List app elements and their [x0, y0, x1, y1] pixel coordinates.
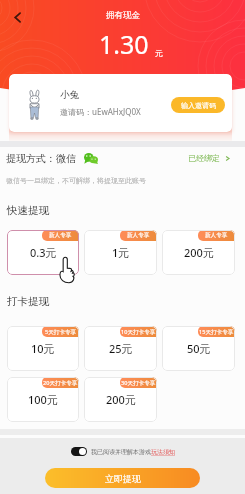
staticText: 50元	[187, 341, 211, 356]
button[interactable]: Back	[5, 5, 29, 29]
staticText: 打卡提现	[7, 295, 49, 308]
staticText: 新人专享	[49, 232, 72, 239]
staticText: 20天打卡专享	[43, 379, 78, 387]
button[interactable]: 输入邀请码	[171, 97, 225, 113]
staticText: 快速提现	[7, 204, 49, 217]
button[interactable]: 提现方式：微信	[0, 148, 245, 168]
button[interactable]: 小兔	[9, 74, 232, 132]
staticText: 10元	[31, 341, 55, 356]
button[interactable]: 30天打卡专享	[84, 377, 157, 422]
staticText: 100元	[28, 392, 58, 407]
button[interactable]: 5天打卡专享	[7, 326, 79, 371]
staticText: 200元	[106, 392, 136, 407]
staticText: 5天打卡专享	[45, 328, 77, 336]
staticText: 我已阅读并理解本游戏	[91, 448, 151, 456]
button[interactable]: 新人专享	[84, 230, 157, 275]
button[interactable]: 新人专享	[7, 230, 79, 275]
staticText: 拥有现金	[106, 10, 140, 21]
staticText: 30天打卡专享	[121, 379, 156, 387]
staticText: 15天打卡专享	[199, 328, 234, 336]
button[interactable]: 15天打卡专享	[162, 326, 235, 371]
staticText: 新人专享	[205, 232, 228, 239]
staticText: 200元	[184, 245, 214, 260]
button[interactable]: 10天打卡专享	[84, 326, 157, 371]
staticText: 元	[155, 48, 163, 58]
staticText: 微信号一旦绑定，不可解绑，将提现至此账号	[6, 176, 146, 185]
staticText: 0.3元	[30, 245, 57, 260]
staticText: 1元	[112, 245, 130, 260]
button[interactable]: 立即提现	[45, 468, 200, 488]
staticText: 小兔	[60, 89, 79, 101]
staticText: 1.30	[99, 27, 149, 61]
staticText: 立即提现	[105, 473, 141, 484]
button[interactable]: 20天打卡专享	[7, 377, 79, 422]
staticText: 提现方式：微信	[6, 152, 76, 165]
staticText: 10天打卡专享	[121, 328, 156, 336]
button[interactable]: 新人专享	[162, 230, 235, 275]
button[interactable]: 我已阅读并理解本游戏	[71, 447, 175, 456]
staticText: 玩法须知	[151, 448, 175, 456]
staticText: 新人专享	[127, 232, 150, 239]
staticText: 25元	[109, 341, 133, 356]
staticText: 邀请码：uEwAHxJQ0X	[60, 106, 141, 117]
staticText: 已经绑定	[188, 153, 220, 163]
staticText: 输入邀请码	[181, 101, 216, 110]
